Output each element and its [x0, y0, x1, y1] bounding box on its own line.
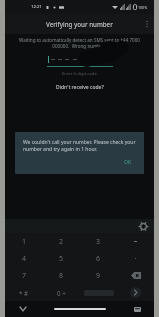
button[interactable]: Hide keyboard: [18, 304, 28, 314]
button[interactable]: 4: [5, 250, 43, 267]
button[interactable]: 1: [5, 233, 43, 250]
staticText: We couldn't call your number. Please che…: [23, 139, 136, 152]
button[interactable]: [47, 56, 113, 67]
staticText: 100%: [138, 5, 148, 10]
staticText: 7: [22, 271, 27, 281]
button[interactable]: 6: [80, 250, 117, 267]
staticText: Didn't receive code?: [56, 84, 104, 91]
button[interactable]: Backspace: [117, 267, 154, 284]
staticText: 4: [22, 254, 27, 264]
button[interactable]: Home: [54, 308, 106, 310]
staticText: Waiting to automatically detect an SMS s…: [13, 37, 146, 49]
staticText: Verifying your number: [46, 20, 113, 28]
staticText: 0 +: [57, 289, 66, 297]
button[interactable]: OK: [120, 158, 136, 167]
button[interactable]: 5: [43, 250, 80, 267]
button[interactable]: 8: [43, 267, 80, 284]
staticText: OK: [124, 159, 132, 166]
button[interactable]: Switch keyboard: [132, 304, 143, 315]
button[interactable]: 2: [43, 233, 80, 250]
button[interactable]: Space: [80, 284, 117, 301]
button[interactable]: More options: [140, 17, 154, 31]
button[interactable]: Didn't receive code?: [54, 82, 106, 93]
button[interactable]: 3: [80, 233, 117, 250]
button[interactable]: 0 +: [43, 284, 80, 301]
staticText: * #: [19, 289, 29, 297]
button[interactable]: 9: [80, 267, 117, 284]
button[interactable]: [117, 233, 154, 250]
button[interactable]: 7: [5, 267, 43, 284]
staticText: 9: [96, 271, 101, 281]
staticText: 6: [96, 254, 101, 264]
staticText: 8: [59, 271, 64, 281]
button[interactable]: Keyboard settings: [139, 222, 148, 231]
staticText: 1: [22, 237, 27, 247]
button[interactable]: Enter: [117, 284, 154, 301]
staticText: 2: [59, 237, 64, 247]
button[interactable]: * #: [5, 284, 43, 301]
staticText: Enter 6-digit code: [62, 71, 97, 77]
staticText: 12:21: [31, 4, 42, 10]
staticText: 5: [59, 254, 64, 264]
staticText: 3: [96, 237, 101, 247]
